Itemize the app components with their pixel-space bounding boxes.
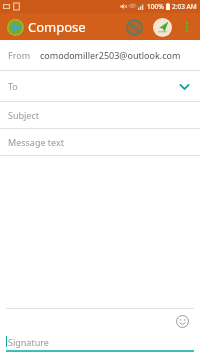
- button[interactable]: From: [0, 40, 200, 71]
- button[interactable]: Send: [150, 15, 174, 39]
- staticText: comodomiller2503@outlook.com: [40, 49, 181, 61]
- button[interactable]: Insert emoji: [172, 311, 192, 331]
- button[interactable]: Signature: [0, 333, 200, 355]
- staticText: 2:03 AM: [172, 2, 197, 11]
- button[interactable]: More options: [178, 18, 196, 36]
- button[interactable]: Subject: [0, 102, 200, 129]
- button[interactable]: Navigate up: [4, 16, 26, 38]
- staticText: Signature: [8, 336, 49, 348]
- button[interactable]: Attach: [122, 15, 146, 39]
- button[interactable]: To: [0, 71, 200, 102]
- staticText: Compose: [28, 18, 86, 36]
- staticText: 100%: [147, 2, 164, 11]
- button[interactable]: Show Cc and Bcc: [176, 78, 192, 94]
- staticText: Message text: [8, 136, 65, 148]
- button[interactable]: Message text: [0, 129, 200, 156]
- staticText: From: [8, 49, 31, 61]
- staticText: To: [8, 80, 18, 92]
- staticText: Subject: [8, 109, 40, 121]
